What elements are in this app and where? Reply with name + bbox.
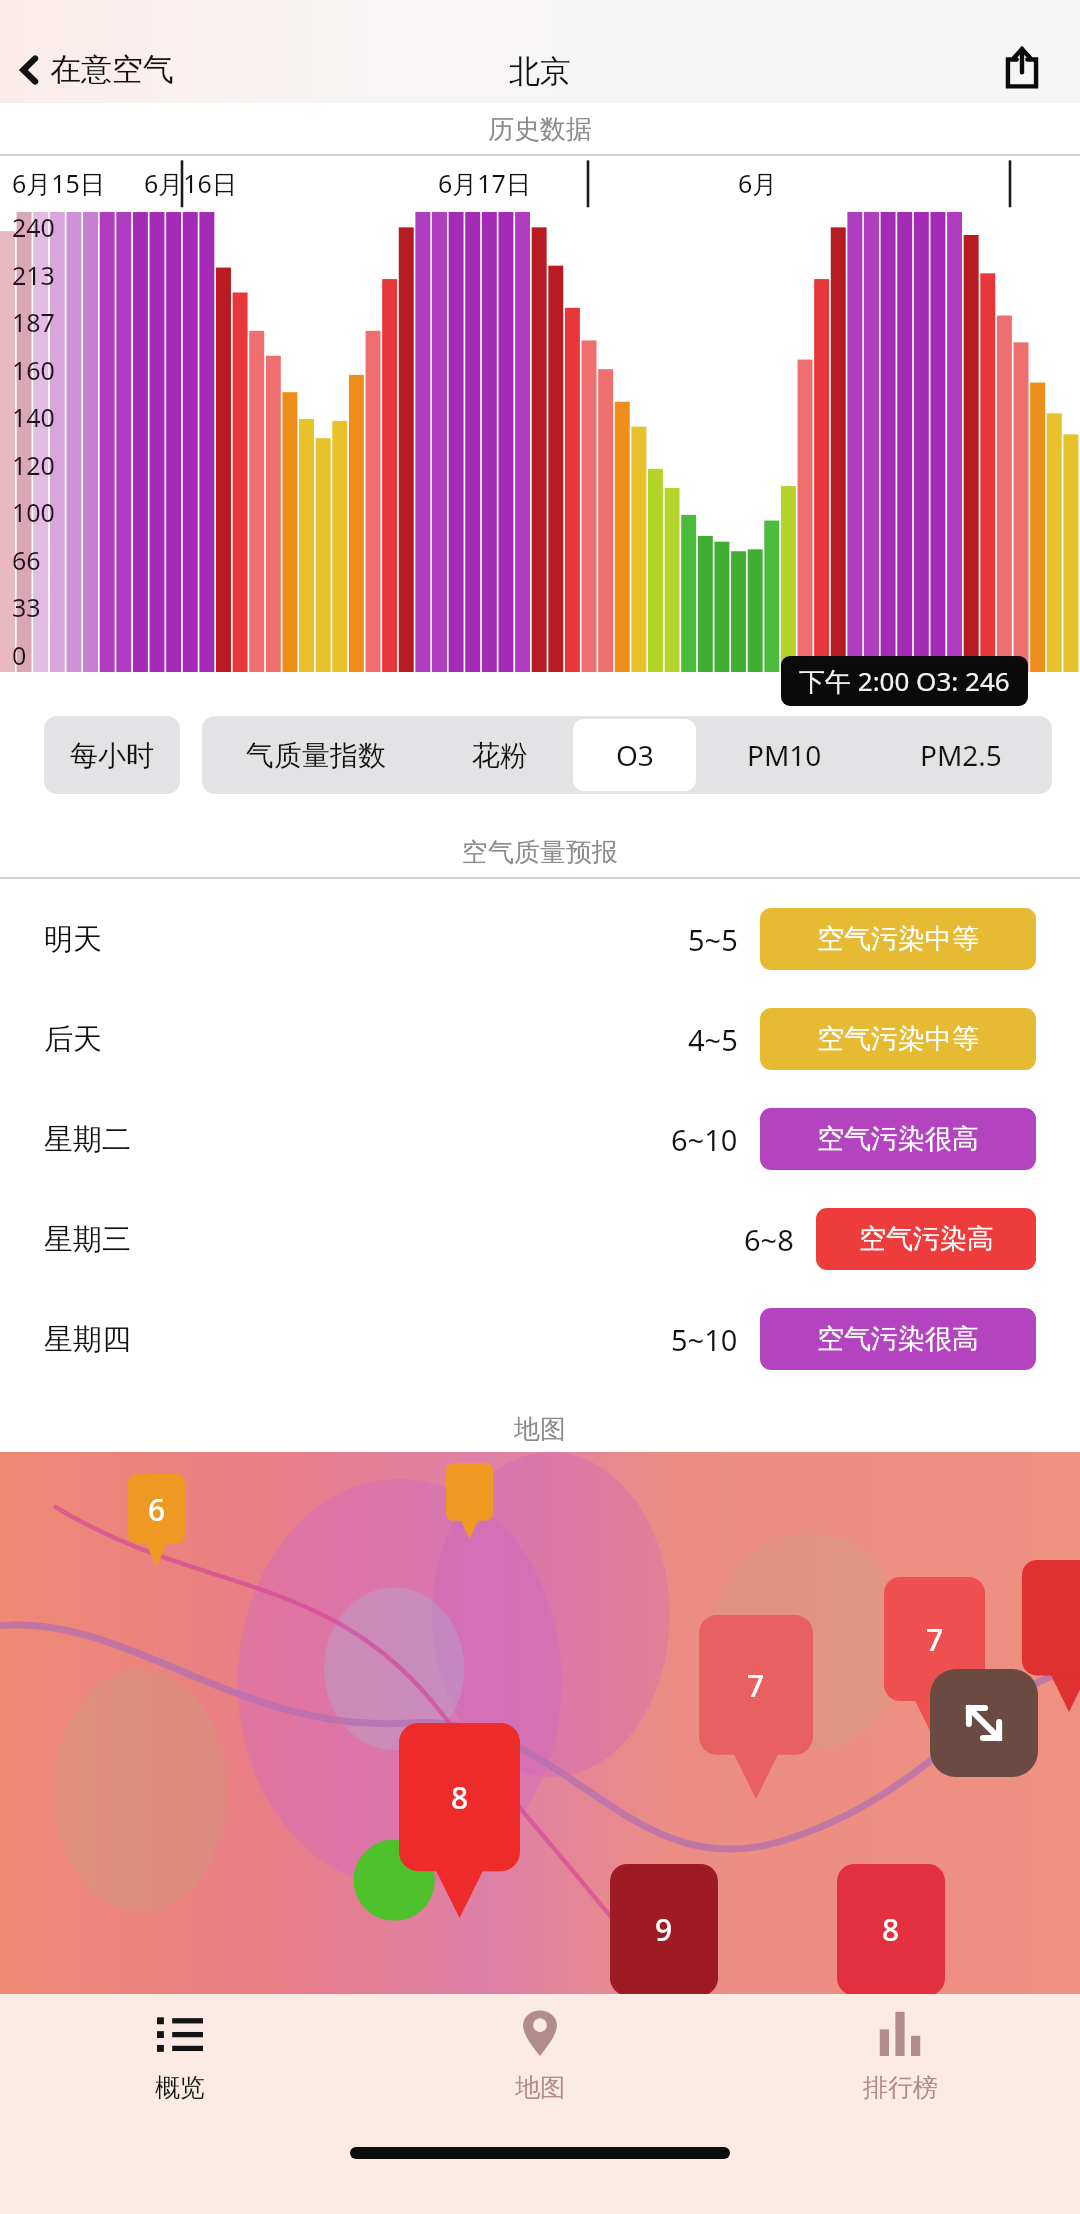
staticText: 排行榜 — [863, 2072, 938, 2103]
staticText: 空气质量预报 — [462, 836, 618, 869]
button[interactable]: 概览 — [0, 1994, 360, 2116]
staticText: 66 — [12, 543, 41, 577]
button[interactable]: Map — [0, 1452, 1080, 1994]
staticText: 5~10 — [671, 1320, 738, 1359]
staticText: 星期三 — [44, 1221, 131, 1258]
staticText: 4~5 — [688, 1020, 738, 1059]
staticText: 8 — [451, 1777, 469, 1818]
staticText: 星期四 — [44, 1321, 131, 1358]
staticText: 7 — [926, 1619, 944, 1660]
staticText: 33 — [12, 590, 41, 624]
staticText: 5~5 — [688, 920, 738, 959]
staticText: 地图 — [514, 1413, 566, 1446]
button[interactable]: 后天 — [0, 989, 1080, 1089]
staticText: 空气污染中等 — [817, 1022, 979, 1056]
button[interactable]: 在意空气 — [14, 48, 178, 91]
staticText: 气质量指数 — [246, 738, 386, 773]
staticText: 6月 — [738, 166, 778, 200]
staticText: 213 — [12, 258, 55, 292]
staticText: 8 — [882, 1909, 900, 1950]
staticText: 星期二 — [44, 1121, 131, 1158]
staticText: PM10 — [747, 736, 822, 774]
staticText: 花粉 — [472, 738, 528, 773]
staticText: 下午 2:00 O3: 246 — [799, 663, 1010, 699]
button[interactable]: 花粉 — [430, 716, 570, 794]
staticText: 120 — [12, 448, 55, 482]
staticText: 0 — [12, 638, 27, 672]
button[interactable]: 明天 — [0, 889, 1080, 989]
staticText: 历史数据 — [488, 113, 592, 146]
staticText: 6月16日 — [144, 166, 237, 200]
staticText: 6 — [148, 1489, 166, 1530]
button[interactable]: 地图 — [360, 1994, 720, 2116]
staticText: 在意空气 — [50, 50, 174, 89]
staticText: 6月17日 — [438, 166, 531, 200]
button[interactable]: 排行榜 — [720, 1994, 1080, 2116]
staticText: 160 — [12, 353, 55, 387]
staticText: 概览 — [155, 2072, 205, 2103]
staticText: 240 — [12, 210, 55, 244]
button[interactable]: O3 — [573, 719, 696, 791]
staticText: 后天 — [44, 1021, 102, 1058]
staticText: PM2.5 — [920, 736, 1002, 774]
button[interactable]: Expand map — [930, 1669, 1038, 1777]
staticText: O3 — [616, 736, 654, 774]
staticText: 6~10 — [671, 1120, 738, 1159]
staticText: 7 — [747, 1665, 765, 1706]
staticText: 6~8 — [744, 1220, 794, 1259]
staticText: 地图 — [515, 2072, 565, 2103]
staticText: 每小时 — [70, 738, 154, 773]
button[interactable]: Share — [994, 39, 1050, 95]
staticText: 明天 — [44, 921, 102, 958]
staticText: 9 — [655, 1909, 673, 1950]
button[interactable]: PM10 — [699, 716, 869, 794]
button[interactable]: 每小时 — [44, 716, 180, 794]
staticText: 100 — [12, 495, 55, 529]
button[interactable]: 星期四 — [0, 1289, 1080, 1389]
staticText: 北京 — [509, 52, 571, 91]
staticText: 空气污染高 — [859, 1222, 994, 1256]
button[interactable]: PM2.5 — [869, 716, 1052, 794]
staticText: 空气污染很高 — [817, 1322, 979, 1356]
staticText: 空气污染中等 — [817, 922, 979, 956]
button[interactable]: 星期二 — [0, 1089, 1080, 1189]
button[interactable]: 星期三 — [0, 1189, 1080, 1289]
staticText: 6月15日 — [12, 166, 105, 200]
staticText: 140 — [12, 400, 55, 434]
button[interactable]: 下午 2:00 O3: 246 — [781, 656, 1028, 706]
staticText: 空气污染很高 — [817, 1122, 979, 1156]
staticText: 187 — [12, 305, 55, 339]
button[interactable]: 气质量指数 — [202, 716, 430, 794]
